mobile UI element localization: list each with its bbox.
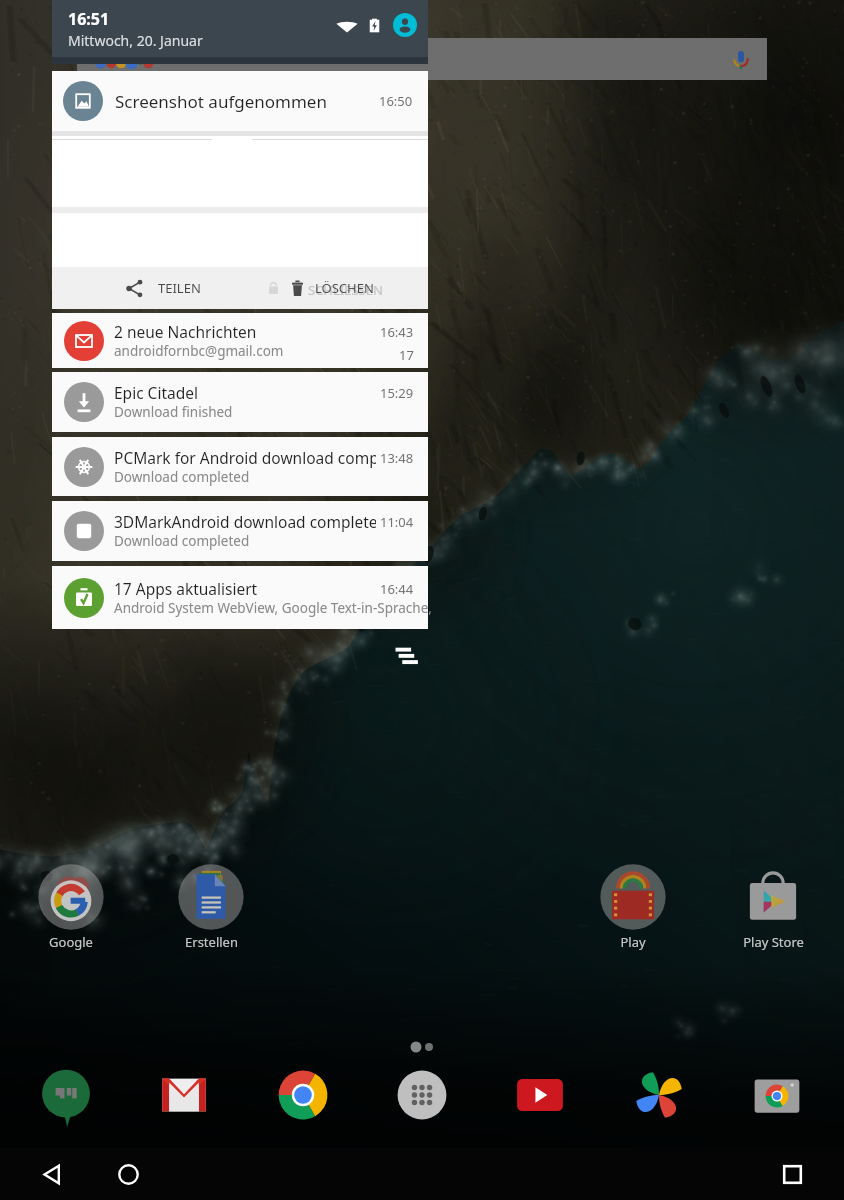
- staticText: 16:50: [379, 92, 413, 110]
- button[interactable]: TEILEN: [124, 267, 201, 309]
- staticText: TEILEN: [158, 279, 201, 297]
- staticText: 3DMarkAndroid download completed: [114, 511, 430, 532]
- staticText: 16:43: [380, 323, 414, 341]
- staticText: Download finished: [114, 403, 434, 421]
- button[interactable]: Home: [106, 1148, 150, 1200]
- staticText: 17 Apps aktualisiert: [114, 578, 430, 599]
- button[interactable]: Chrome: [269, 1061, 337, 1129]
- staticText: 13:48: [380, 449, 414, 467]
- button[interactable]: Erstellen: [149, 863, 273, 959]
- staticText: Play Store: [743, 933, 804, 951]
- button[interactable]: Play: [571, 863, 695, 959]
- staticText: androidfornbc@gmail.com: [114, 342, 434, 360]
- staticText: Mittwoch, 20. Januar: [68, 31, 203, 50]
- staticText: 17: [399, 346, 414, 364]
- staticText: PCMark for Android download completed: [114, 447, 430, 468]
- button[interactable]: Camera: [743, 1061, 811, 1129]
- staticText: 11:04: [380, 513, 414, 531]
- staticText: Erstellen: [185, 933, 238, 951]
- button[interactable]: User profile: [393, 13, 417, 37]
- button[interactable]: 16:51: [52, 0, 428, 64]
- button[interactable]: YouTube: [506, 1061, 574, 1129]
- other: Voice search: [731, 49, 751, 69]
- staticText: Download completed: [114, 532, 434, 550]
- button[interactable]: Epic Citadel: [52, 372, 428, 432]
- button[interactable]: Clear all notifications: [392, 640, 424, 672]
- staticText: Download completed: [114, 468, 434, 486]
- button[interactable]: 3DMarkAndroid download completed: [52, 501, 428, 561]
- button[interactable]: Play Store: [711, 863, 835, 959]
- staticText: Google: [49, 933, 93, 951]
- button[interactable]: Photos: [625, 1061, 693, 1129]
- button[interactable]: 2 neue Nachrichten: [52, 313, 428, 368]
- button[interactable]: Google: [9, 863, 133, 959]
- button[interactable]: Gmail: [150, 1061, 218, 1129]
- button[interactable]: Back: [30, 1148, 74, 1200]
- button[interactable]: PCMark for Android download completed: [52, 437, 428, 496]
- staticText: 15:29: [380, 384, 414, 402]
- staticText: Play: [620, 933, 646, 951]
- button[interactable]: 17 Apps aktualisiert: [52, 566, 428, 629]
- staticText: 2 neue Nachrichten: [114, 321, 430, 342]
- staticText: Epic Citadel: [114, 382, 430, 403]
- staticText: Android System WebView, Google Text-in-S…: [114, 599, 434, 617]
- staticText: LÖSCHEN: [315, 279, 374, 297]
- button[interactable]: LÖSCHEN: [265, 267, 374, 309]
- button[interactable]: Google Search: [77, 38, 767, 80]
- button[interactable]: All apps: [388, 1061, 456, 1129]
- button[interactable]: Hangouts: [32, 1061, 100, 1129]
- button[interactable]: Screenshot aufgenommen: [52, 71, 428, 309]
- staticText: 16:51: [68, 8, 110, 30]
- button[interactable]: Recent apps: [770, 1148, 814, 1200]
- staticText: Screenshot aufgenommen: [115, 90, 327, 113]
- staticText: SCHLIESSEN: [308, 281, 383, 299]
- staticText: 16:44: [380, 580, 414, 598]
